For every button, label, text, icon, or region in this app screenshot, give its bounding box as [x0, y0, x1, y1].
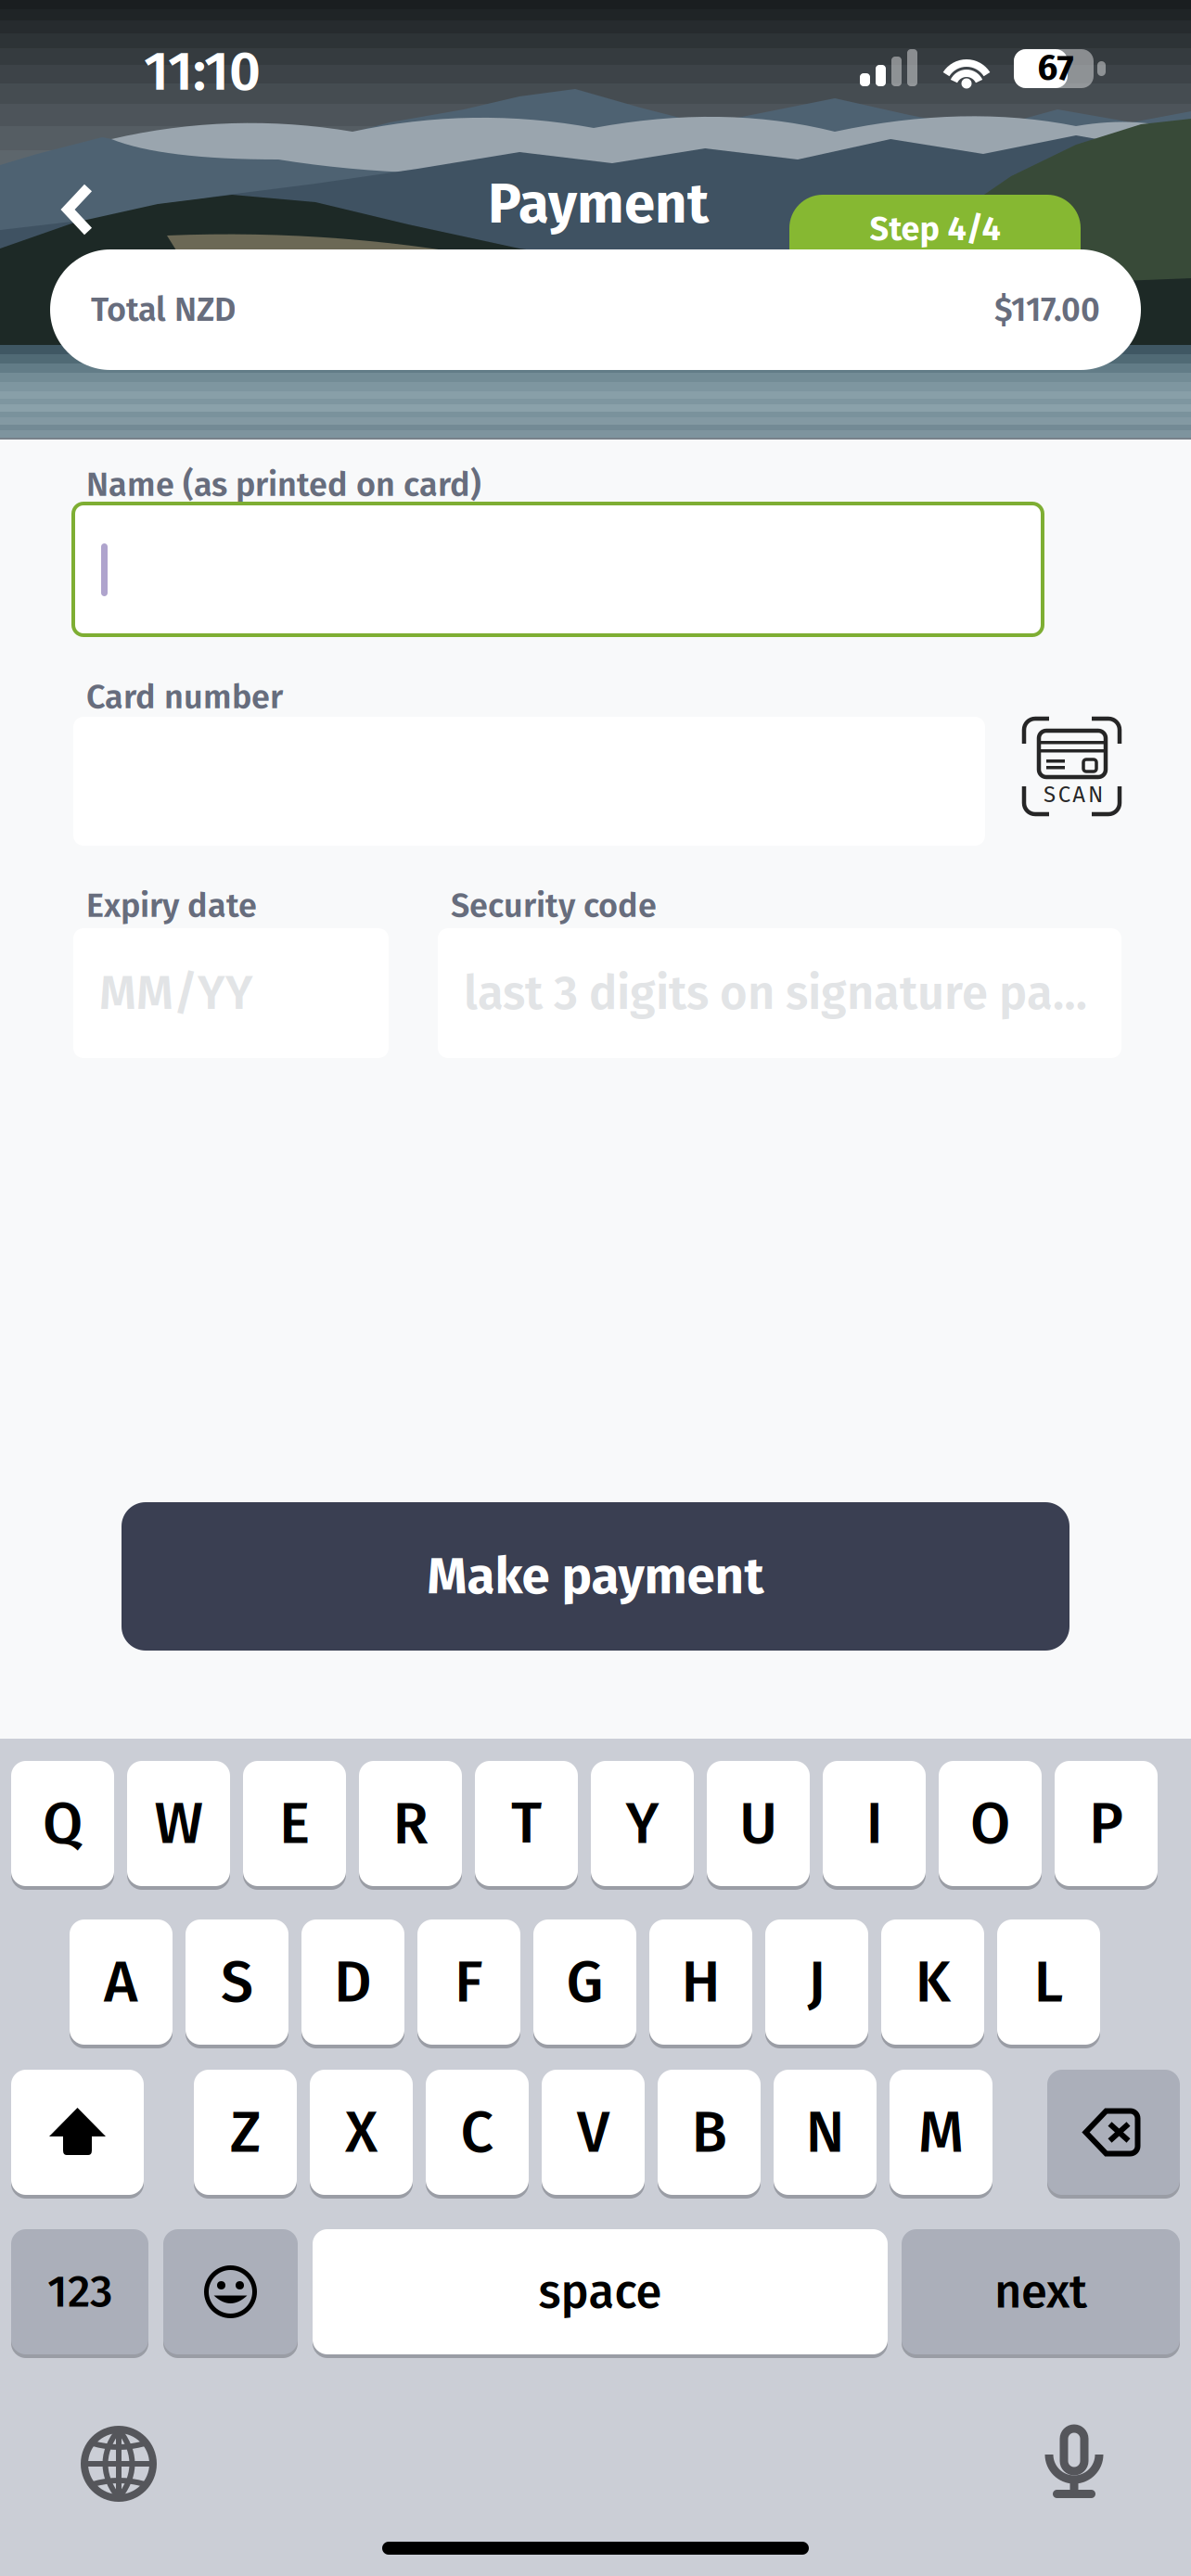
button[interactable]: M	[890, 2070, 992, 2199]
button[interactable]: E	[243, 1761, 346, 1890]
staticText: S	[221, 1947, 253, 2017]
button[interactable]: I	[823, 1761, 926, 1890]
staticText: P	[1089, 1789, 1123, 1858]
button[interactable]: P	[1055, 1761, 1158, 1890]
staticText: next	[994, 2264, 1087, 2320]
staticText: R	[393, 1789, 428, 1858]
staticText: F	[455, 1947, 483, 2017]
button[interactable]: T	[475, 1761, 578, 1890]
button[interactable]: 123	[11, 2229, 148, 2358]
button[interactable]: X	[310, 2070, 413, 2199]
button[interactable]: D	[301, 1919, 404, 2048]
button[interactable]: K	[881, 1919, 984, 2048]
button[interactable]: F	[417, 1919, 520, 2048]
button[interactable]: Delete	[1047, 2070, 1180, 2199]
staticText: $117.00	[994, 290, 1100, 330]
button[interactable]: B	[658, 2070, 761, 2199]
staticText: MM/YY	[99, 965, 253, 1021]
button[interactable]: Make payment	[122, 1502, 1069, 1651]
staticText: Name (as printed on card)	[86, 465, 481, 505]
staticText: X	[345, 2097, 378, 2167]
button[interactable]: N	[774, 2070, 877, 2199]
staticText: O	[970, 1789, 1010, 1858]
staticText: space	[538, 2264, 662, 2320]
button[interactable]: space	[313, 2229, 888, 2358]
button[interactable]: U	[707, 1761, 810, 1890]
button[interactable]: O	[939, 1761, 1042, 1890]
staticText: Y	[626, 1789, 659, 1858]
staticText: Q	[43, 1789, 83, 1858]
button[interactable]: Y	[591, 1761, 694, 1890]
staticText: 11:10	[144, 39, 261, 104]
button[interactable]: V	[542, 2070, 645, 2199]
staticText: K	[915, 1947, 950, 2017]
staticText: Card number	[86, 677, 283, 717]
button[interactable]: R	[359, 1761, 462, 1890]
button[interactable]: Back	[32, 163, 124, 256]
staticText: Make payment	[427, 1546, 764, 1607]
button[interactable]: Step 4/4	[789, 195, 1081, 297]
staticText: C	[461, 2097, 494, 2167]
staticText: 123	[47, 2265, 112, 2318]
staticText: G	[566, 1947, 603, 2017]
staticText: V	[577, 2097, 609, 2167]
staticText: M	[918, 2097, 964, 2167]
button[interactable]: L	[997, 1919, 1100, 2048]
staticText: Security code	[451, 886, 657, 926]
button[interactable]: S	[186, 1919, 288, 2048]
staticText: Z	[230, 2097, 261, 2167]
button[interactable]: Scan card	[1022, 716, 1124, 820]
staticText: Payment	[488, 171, 709, 237]
staticText: B	[692, 2097, 727, 2167]
button[interactable]: C	[426, 2070, 529, 2199]
staticText: Expiry date	[86, 886, 257, 926]
staticText: H	[681, 1947, 720, 2017]
staticText: T	[511, 1789, 542, 1858]
staticText: A	[104, 1947, 138, 2017]
button[interactable]: H	[649, 1919, 752, 2048]
button[interactable]: Dictate	[1023, 2417, 1125, 2509]
staticText: D	[334, 1947, 372, 2017]
button[interactable]: J	[765, 1919, 868, 2048]
staticText: W	[154, 1789, 203, 1858]
staticText: Total NZD	[91, 290, 236, 330]
button[interactable]: Shift	[11, 2070, 144, 2199]
staticText: I	[866, 1789, 883, 1858]
button[interactable]: G	[533, 1919, 636, 2048]
button[interactable]: Z	[194, 2070, 297, 2199]
button[interactable]: W	[127, 1761, 230, 1890]
button[interactable]: A	[70, 1919, 173, 2048]
button[interactable]: Next keyboard	[68, 2417, 170, 2510]
staticText: J	[807, 1947, 826, 2017]
staticText: U	[739, 1789, 777, 1858]
staticText: L	[1034, 1947, 1063, 2017]
staticText: Step 4/4	[870, 209, 1000, 249]
staticText: SCAN	[1044, 781, 1103, 808]
staticText: last 3 digits on signature pa…	[464, 965, 1087, 1021]
button[interactable]: next	[902, 2229, 1180, 2358]
staticText: E	[279, 1789, 310, 1858]
staticText: N	[806, 2097, 845, 2167]
staticText: 67	[1037, 46, 1074, 89]
button[interactable]: Emoji	[163, 2229, 298, 2358]
button[interactable]: Q	[11, 1761, 114, 1890]
